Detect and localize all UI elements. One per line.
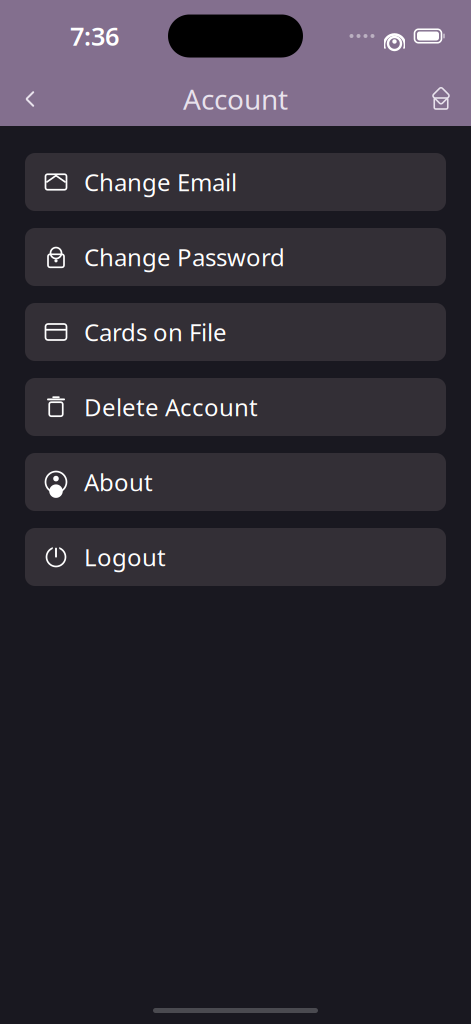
staticText: Cards on File xyxy=(84,316,227,348)
button[interactable]: Delete Account xyxy=(25,378,446,436)
button[interactable]: Logout xyxy=(25,528,446,586)
button[interactable]: Change Password xyxy=(25,228,446,286)
staticText: Change Email xyxy=(84,166,237,198)
button[interactable]: Home xyxy=(417,76,465,122)
button[interactable]: About xyxy=(25,453,446,511)
staticText: Change Password xyxy=(84,241,285,273)
button[interactable]: Back xyxy=(6,76,54,122)
staticText: 7:36 xyxy=(70,19,119,53)
staticText: About xyxy=(84,466,153,498)
button[interactable]: Change Email xyxy=(25,153,446,211)
staticText: Delete Account xyxy=(84,391,258,423)
staticText: Logout xyxy=(84,541,166,573)
staticText: Account xyxy=(183,80,288,118)
button[interactable]: Cards on File xyxy=(25,303,446,361)
